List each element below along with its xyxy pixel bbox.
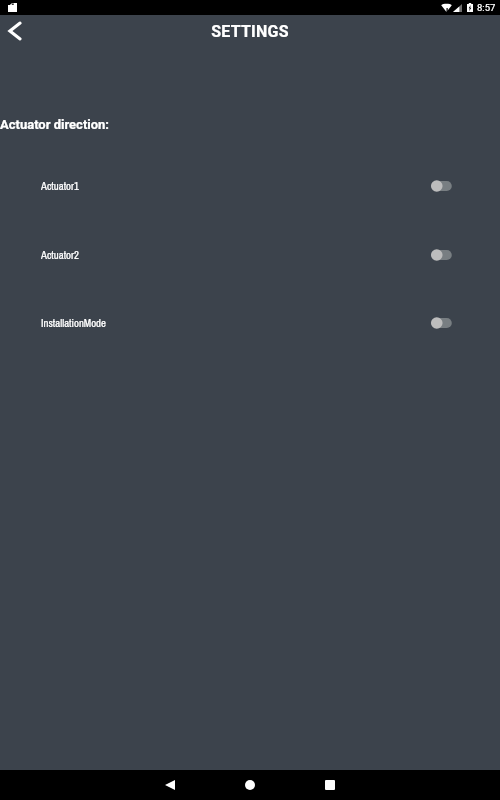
staticText: Actuator1 — [41, 179, 79, 194]
staticText: InstallationMode — [41, 316, 106, 331]
staticText: 8:57 — [477, 2, 496, 13]
staticText: Actuator2 — [41, 248, 79, 263]
button[interactable]: Recent apps — [310, 770, 350, 800]
button[interactable]: Actuator1 — [0, 175, 500, 197]
button[interactable]: Back — [0, 9, 30, 52]
button[interactable]: Back — [150, 770, 190, 800]
button[interactable]: Actuator2 — [0, 244, 500, 266]
button[interactable]: Home — [230, 770, 270, 800]
staticText: Actuator direction: — [0, 117, 110, 132]
button[interactable]: InstallationMode — [0, 312, 500, 334]
staticText: SETTINGS — [211, 22, 289, 41]
